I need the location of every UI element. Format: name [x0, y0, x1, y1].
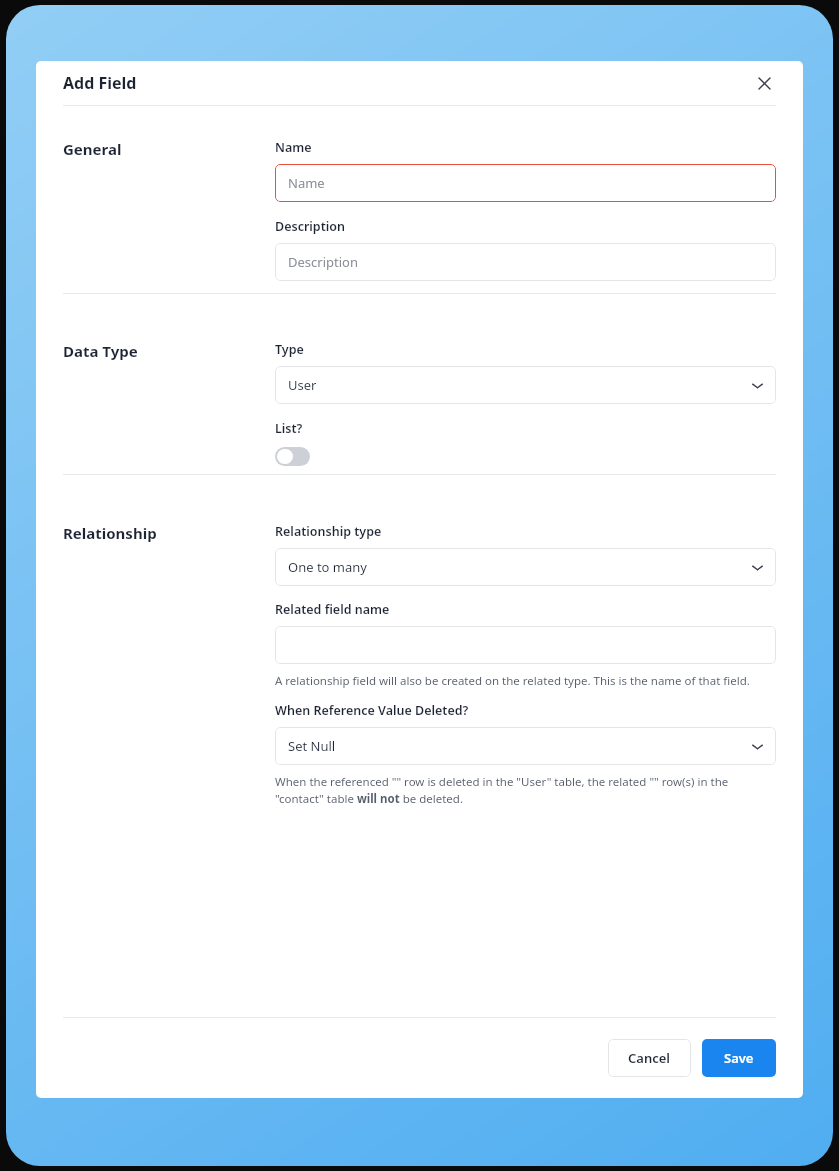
staticText: Related field name [275, 601, 390, 618]
staticText: Relationship [63, 523, 157, 543]
staticText: One to many [288, 558, 367, 576]
staticText: Save [724, 1049, 754, 1067]
staticText: General [63, 139, 122, 159]
button[interactable]: Close [752, 71, 776, 95]
staticText: When the referenced "" row is deleted in… [275, 774, 776, 807]
staticText: Data Type [63, 341, 138, 361]
staticText: Relationship type [275, 523, 382, 540]
button[interactable]: User [275, 366, 776, 404]
staticText: Cancel [628, 1049, 671, 1067]
button[interactable]: One to many [275, 548, 776, 586]
staticText: When Reference Value Deleted? [275, 702, 469, 719]
staticText: Description [288, 253, 358, 271]
button[interactable]: Set Null [275, 727, 776, 765]
staticText: Description [275, 218, 345, 235]
button[interactable]: Name [275, 164, 776, 202]
staticText: Name [275, 139, 312, 156]
button[interactable]: Save [702, 1039, 776, 1077]
staticText: Type [275, 341, 304, 358]
button[interactable]: List toggle [275, 447, 310, 466]
button[interactable]: Cancel [608, 1039, 691, 1077]
staticText: User [288, 376, 317, 394]
button[interactable]: Description [275, 243, 776, 281]
staticText: A relationship field will also be create… [275, 673, 750, 689]
staticText: Name [288, 174, 325, 192]
staticText: Add Field [63, 72, 137, 94]
staticText: List? [275, 420, 303, 437]
staticText: Set Null [288, 737, 336, 755]
button[interactable] [275, 626, 776, 664]
